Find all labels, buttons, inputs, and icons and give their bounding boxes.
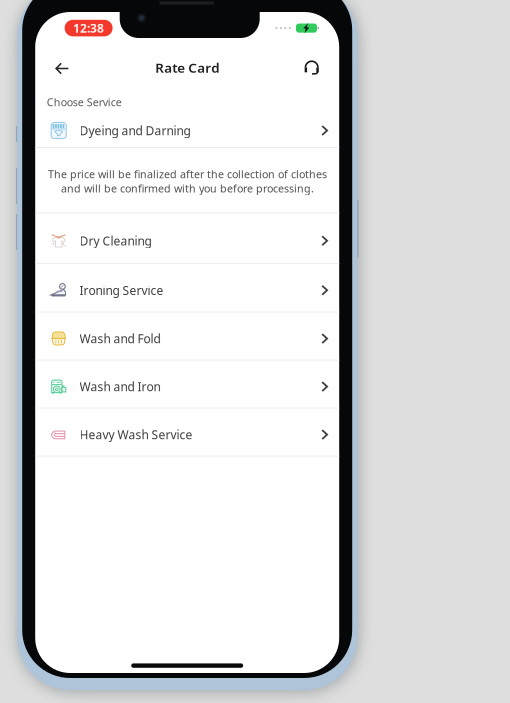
staticText: 12:38	[73, 20, 104, 36]
button[interactable]: Back	[45, 52, 79, 82]
staticText: The price will be finalized after the co…	[48, 167, 327, 195]
staticText: Dyeing and Darning	[80, 122, 191, 138]
staticText: Wash and Iron	[80, 379, 161, 394]
staticText: Choose Service	[47, 95, 122, 109]
button[interactable]: Dyeing and Darning	[35, 114, 339, 147]
staticText: Rate Card	[155, 59, 219, 76]
staticText: Heavy Wash Service	[80, 427, 193, 442]
button[interactable]: Heavy Wash Service	[35, 408, 339, 456]
staticText: Ironing Service	[80, 282, 164, 298]
button[interactable]: Customer support	[297, 52, 327, 82]
staticText: Wash and Fold	[80, 331, 161, 346]
button[interactable]: Dry Cleaning	[35, 213, 339, 263]
button[interactable]: Wash and Fold	[35, 312, 339, 360]
staticText: Dry Cleaning	[80, 233, 152, 249]
button[interactable]: Ironing Service	[35, 264, 339, 311]
button[interactable]: Wash and Iron	[35, 361, 339, 407]
